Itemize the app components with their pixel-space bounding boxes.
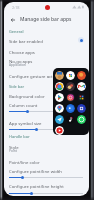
button[interactable]: Reddit [77,71,86,80]
staticText: Application [9,63,26,67]
button[interactable]: Style [4,142,89,154]
button[interactable]: Configure gesture activity [4,70,89,80]
button[interactable]: Gmail [77,82,86,91]
button[interactable]: Apps [77,93,86,102]
button[interactable]: Gallery [66,82,75,91]
button[interactable]: Files [77,104,86,113]
button[interactable]: Telegram [55,115,64,124]
button[interactable]: Play Store [55,93,64,102]
staticText: Point/line color [9,159,40,165]
button[interactable]: Point/line color [4,156,89,166]
button[interactable]: Chrome [55,82,64,91]
staticText: Handle bar [9,134,30,139]
button[interactable]: Back [7,14,19,26]
button[interactable]: WhatsApp [77,115,86,124]
staticText: No-go apps [9,58,33,64]
staticText: Column count [9,102,38,108]
button[interactable]: Messenger [66,104,75,113]
button[interactable]: Side bar enabled [4,35,89,45]
staticText: Side bar enabled [9,38,43,44]
staticText: Point [9,149,17,153]
button[interactable]: Maps [55,104,64,113]
staticText: Style [9,144,19,150]
button[interactable]: YouTube [55,126,64,135]
staticText: 2:18 [12,5,20,10]
staticText: Configure point/line height [9,183,64,189]
staticText: Configure gesture activity [9,73,61,79]
button[interactable]: Photos avatar [55,71,64,80]
button[interactable]: Background color [4,90,89,100]
button[interactable]: Instagram [66,93,75,102]
staticText: Background color [9,93,45,99]
button[interactable]: TikTok [66,115,75,124]
staticText: Choose apps [9,49,35,55]
staticText: Side bar [9,84,25,89]
button[interactable]: Choose apps [4,46,89,56]
button[interactable]: Google Photos [66,71,75,80]
button[interactable]: No-go apps [4,56,89,68]
staticText: Configure point/line width [9,168,62,174]
staticText: App symbol size [9,120,42,126]
staticText: Manage side bar apps [20,16,72,23]
staticText: General [9,29,24,34]
